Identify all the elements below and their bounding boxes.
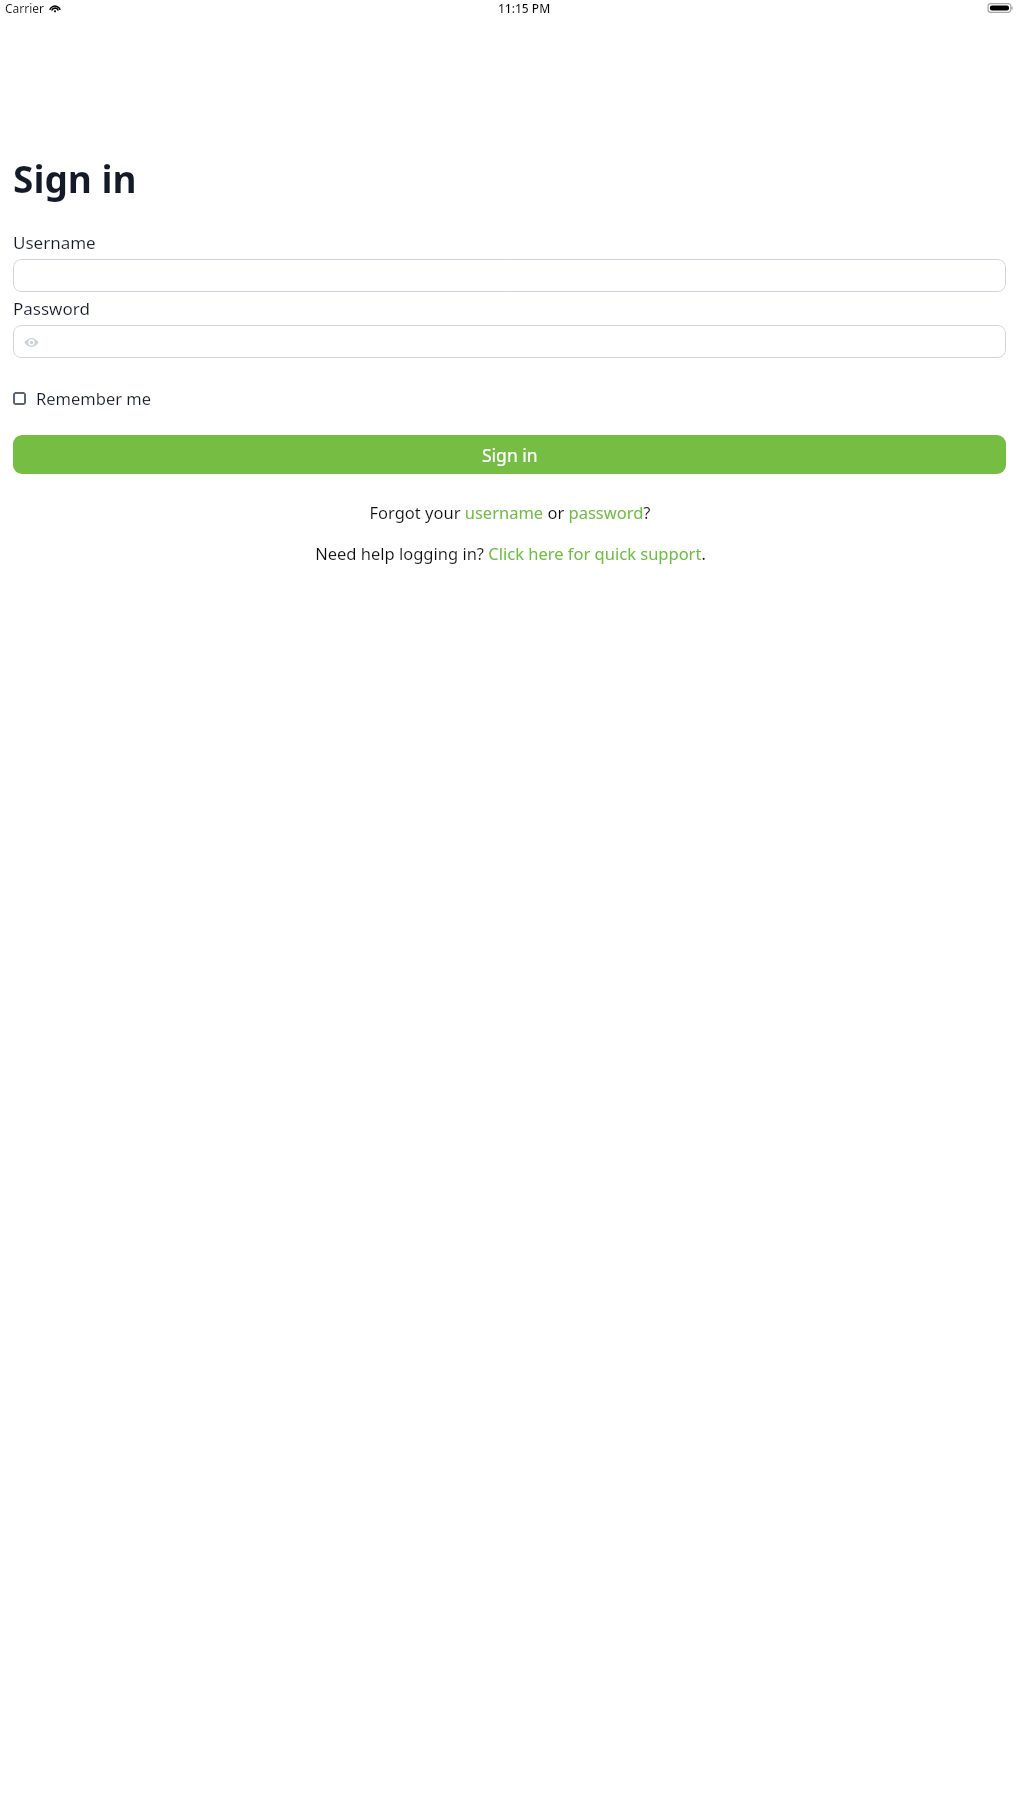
button[interactable]: Show password (13, 325, 1006, 358)
button[interactable]: Show password (19, 330, 43, 354)
staticText: Sign in (13, 153, 137, 203)
staticText: 11:15 PM (498, 0, 551, 16)
button[interactable]: Need help logging in? Click here for qui… (0, 542, 1020, 564)
button[interactable]: Remember me (13, 387, 152, 409)
button[interactable] (13, 259, 1006, 292)
button[interactable]: Forgot your username or password? (0, 501, 1020, 523)
staticText: Carrier (5, 0, 45, 16)
staticText: Forgot your username or password? (369, 501, 651, 523)
staticText: Remember me (36, 387, 152, 409)
staticText: Need help logging in? Click here for qui… (315, 542, 706, 564)
button[interactable]: Sign in (13, 435, 1006, 474)
staticText: Username (13, 231, 96, 254)
staticText: Sign in (482, 443, 538, 467)
staticText: Password (13, 297, 90, 320)
